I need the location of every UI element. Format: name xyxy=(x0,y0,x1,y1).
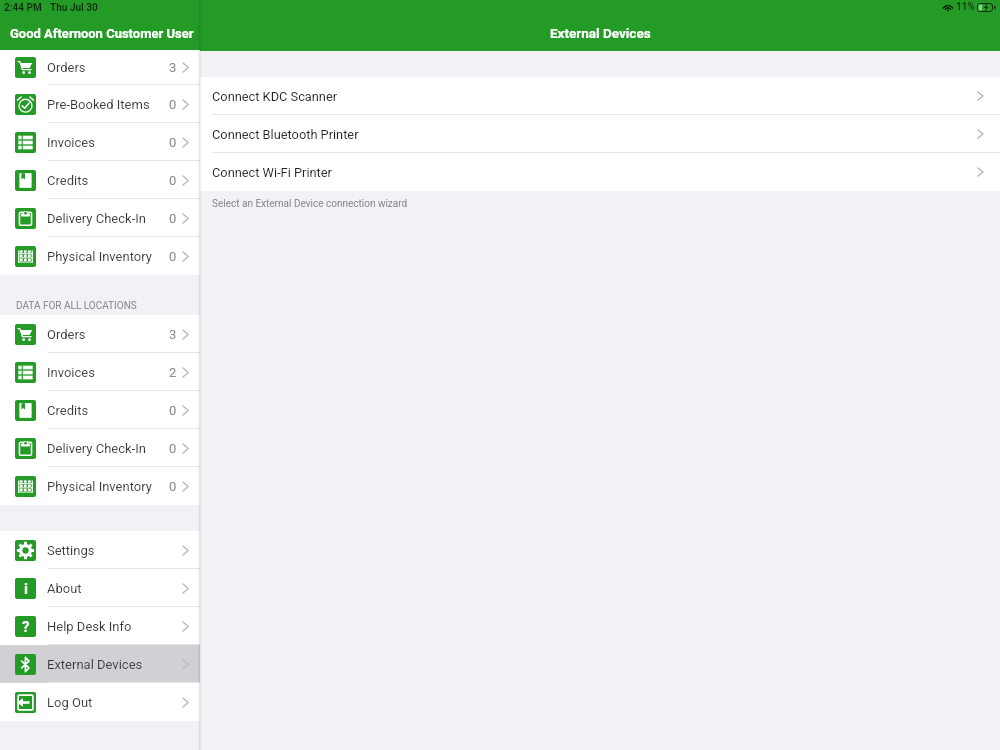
staticText: Help Desk Info xyxy=(47,619,132,634)
staticText: Log Out xyxy=(47,695,93,710)
button[interactable]: Delivery Check-In xyxy=(0,199,200,237)
staticText: Delivery Check-In xyxy=(47,441,146,456)
staticText: External Devices xyxy=(550,25,651,41)
staticText: Connect Wi-Fi Printer xyxy=(212,165,332,180)
button[interactable]: Physical Inventory xyxy=(0,467,200,505)
staticText: 0 xyxy=(169,249,177,264)
staticText: Select an External Device connection wiz… xyxy=(212,198,408,210)
staticText: Connect KDC Scanner xyxy=(212,89,338,104)
staticText: 11% xyxy=(956,1,975,13)
staticText: 2 xyxy=(169,365,177,380)
staticText: 0 xyxy=(169,135,177,150)
staticText: Pre-Booked Items xyxy=(47,97,150,112)
staticText: 0 xyxy=(169,97,177,112)
button[interactable]: Pre-Booked Items xyxy=(0,85,200,123)
staticText: Thu Jul 30 xyxy=(50,2,98,14)
staticText: ? xyxy=(22,618,30,636)
staticText: Credits xyxy=(47,173,89,188)
staticText: 2:44 PM xyxy=(4,2,42,14)
staticText: 0 xyxy=(169,479,177,494)
staticText: 0 xyxy=(169,211,177,226)
button[interactable]: Physical Inventory xyxy=(0,237,200,275)
button[interactable]: Delivery Check-In xyxy=(0,429,200,467)
button[interactable]: Credits xyxy=(0,161,200,199)
staticText: Orders xyxy=(47,60,86,75)
staticText: About xyxy=(47,581,82,596)
staticText: Orders xyxy=(47,327,86,342)
staticText: i xyxy=(24,580,28,598)
staticText: 3 xyxy=(169,327,177,342)
button[interactable]: i xyxy=(0,569,200,607)
staticText: 3 xyxy=(169,60,177,75)
button[interactable]: Settings xyxy=(0,531,200,569)
staticText: Settings xyxy=(47,543,95,558)
button[interactable]: Connect Bluetooth Printer xyxy=(200,115,1000,153)
staticText: DATA FOR ALL LOCATIONS xyxy=(16,300,137,312)
staticText: Invoices xyxy=(47,135,95,150)
staticText: 0 xyxy=(169,403,177,418)
button[interactable]: External Devices xyxy=(0,645,200,683)
button[interactable]: Orders xyxy=(0,50,200,85)
button[interactable]: Invoices xyxy=(0,123,200,161)
staticText: Physical Inventory xyxy=(47,479,152,494)
staticText: Delivery Check-In xyxy=(47,211,146,226)
button[interactable]: Orders xyxy=(0,315,200,353)
button[interactable]: Connect Wi-Fi Printer xyxy=(200,153,1000,191)
button[interactable]: ? xyxy=(0,607,200,645)
staticText: 0 xyxy=(169,173,177,188)
staticText: 0 xyxy=(169,441,177,456)
button[interactable]: Invoices xyxy=(0,353,200,391)
staticText: Connect Bluetooth Printer xyxy=(212,127,359,142)
button[interactable]: Credits xyxy=(0,391,200,429)
staticText: Physical Inventory xyxy=(47,249,152,264)
staticText: Credits xyxy=(47,403,89,418)
staticText: External Devices xyxy=(47,657,143,672)
button[interactable]: Log Out xyxy=(0,683,200,721)
staticText: Good Afternoon Customer User xyxy=(10,26,194,41)
button[interactable]: Connect KDC Scanner xyxy=(200,77,1000,115)
staticText: Invoices xyxy=(47,365,95,380)
